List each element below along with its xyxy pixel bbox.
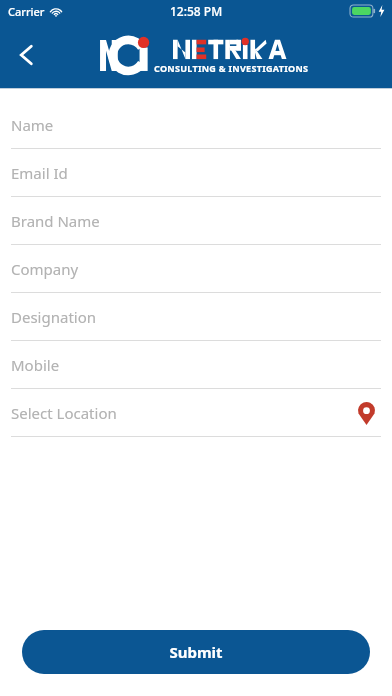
button[interactable]: Select Location — [351, 398, 381, 428]
button[interactable]: Brand Name — [0, 197, 392, 245]
button[interactable]: Submit — [22, 630, 370, 674]
staticText: Select Location — [11, 403, 117, 423]
button[interactable]: Email Id — [0, 149, 392, 197]
staticText: Company — [11, 259, 79, 279]
staticText: Brand Name — [11, 211, 100, 231]
staticText: Mobile — [11, 355, 60, 375]
staticText: Email Id — [11, 163, 68, 183]
staticText: Designation — [11, 307, 97, 327]
staticText: Carrier — [8, 4, 45, 19]
staticText: Name — [11, 115, 54, 135]
button[interactable]: Back — [0, 29, 52, 81]
staticText: CONSULTING & INVESTIGATIONS — [154, 62, 309, 74]
staticText: 12:58 PM — [170, 3, 223, 19]
button[interactable]: Name — [0, 101, 392, 149]
button[interactable]: Company — [0, 245, 392, 293]
button[interactable]: Designation — [0, 293, 392, 341]
button[interactable]: Select Location — [0, 389, 392, 437]
button[interactable]: Mobile — [0, 341, 392, 389]
staticText: Submit — [169, 642, 223, 662]
